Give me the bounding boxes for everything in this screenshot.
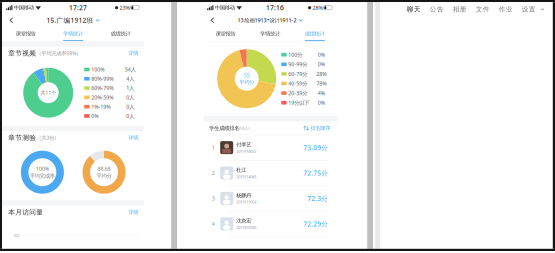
staticText: 28%: [316, 70, 326, 77]
staticText: 1: [212, 144, 215, 151]
staticText: 90-99分: [288, 61, 307, 68]
staticText: 23%: [119, 4, 129, 11]
staticText: 课堂报告: [16, 30, 36, 37]
button[interactable]: 2: [203, 160, 337, 186]
button[interactable]: 文件: [471, 5, 494, 13]
button[interactable]: 相册: [448, 5, 471, 13]
button[interactable]: 排名降序: [303, 125, 330, 131]
staticText: 0%: [318, 51, 325, 58]
staticText: 2019114045: [236, 174, 256, 179]
staticText: 0%: [318, 99, 325, 106]
staticText: 88.68: [97, 165, 110, 172]
staticText: 20-39分: [288, 90, 307, 97]
staticText: 17:16: [266, 3, 284, 12]
button[interactable]: 课堂报告: [203, 30, 248, 37]
staticText: 0人: [126, 112, 134, 119]
staticText: 60-79分: [288, 70, 307, 77]
staticText: 中国移动: [14, 4, 34, 11]
staticText: 课堂报告: [215, 30, 235, 37]
staticText: 73.09分: [303, 143, 328, 152]
staticText: 55: [244, 72, 250, 79]
staticText: 20%-59%: [91, 94, 113, 101]
staticText: 40-59分: [288, 80, 307, 87]
button[interactable]: 作业: [494, 5, 517, 13]
button[interactable]: 3: [203, 186, 337, 211]
staticText: 详情: [128, 50, 138, 56]
button[interactable]: 详情: [128, 134, 138, 141]
button[interactable]: 详情: [128, 209, 138, 215]
staticText: 排名降序: [310, 125, 330, 131]
staticText: 2019119054: [236, 199, 256, 205]
staticText: 72.75分: [303, 169, 328, 177]
staticText: 付李艺: [236, 141, 251, 148]
staticText: 3: [212, 195, 215, 202]
staticText: 1人: [126, 84, 134, 92]
staticText: 2: [212, 169, 215, 177]
staticText: 沈炎宏: [236, 218, 251, 224]
button[interactable]: 成绩统计: [292, 30, 337, 37]
staticText: 设置: [522, 5, 536, 13]
staticText: 详情: [128, 134, 138, 141]
staticText: 0%: [318, 61, 325, 68]
button[interactable]: 成绩统计: [97, 30, 144, 37]
staticText: 成绩统计: [305, 30, 325, 37]
button[interactable]: 学情统计: [248, 30, 293, 37]
staticText: 中国移动: [215, 4, 235, 11]
staticText: 杜江: [236, 167, 246, 173]
button[interactable]: 公告: [425, 5, 448, 13]
staticText: 0%: [91, 112, 98, 119]
staticText: 78%: [316, 80, 326, 87]
staticText: 60%-79%: [91, 84, 113, 92]
staticText: 100分: [288, 51, 302, 58]
button[interactable]: 4: [203, 211, 337, 237]
staticText: 平均分: [96, 173, 111, 179]
staticText: 本月访问量: [8, 208, 43, 216]
staticText: 作业: [499, 5, 513, 13]
staticText: （共3份）: [36, 134, 59, 141]
staticText: 共11个: [40, 89, 56, 96]
staticText: 2019114032: [236, 148, 256, 154]
staticText: 0人: [126, 103, 134, 110]
staticText: 80%-99%: [91, 75, 113, 82]
staticText: (93人): [239, 125, 249, 131]
staticText: 章节测验: [8, 134, 36, 142]
button[interactable]: Back: [203, 13, 222, 27]
staticText: 平均完成率: [30, 173, 55, 179]
staticText: 详情: [128, 209, 138, 215]
staticText: 17:27: [69, 3, 87, 12]
staticText: 相册: [453, 5, 467, 13]
staticText: 200: [13, 233, 19, 238]
staticText: 章节视频: [8, 49, 36, 57]
staticText: 学情统计: [260, 30, 280, 37]
staticText: 文件: [476, 5, 490, 13]
button[interactable]: 学情统计: [49, 30, 97, 37]
staticText: 杨鹏丹: [236, 192, 251, 199]
staticText: 100%: [91, 66, 104, 73]
staticText: 学情统计: [63, 30, 83, 37]
staticText: 28%: [312, 4, 322, 11]
staticText: 4: [212, 220, 215, 227]
staticText: 平均分: [239, 79, 254, 86]
staticText: 学生成绩排名: [209, 125, 239, 131]
button[interactable]: 设置: [517, 5, 540, 13]
staticText: 72.29分: [303, 219, 328, 228]
staticText: 1%-19%: [91, 103, 110, 110]
staticText: 15.广编1912班: [46, 16, 93, 25]
button[interactable]: Back: [2, 13, 21, 27]
staticText: 聊天: [407, 5, 421, 13]
staticText: 成绩统计: [110, 30, 130, 37]
button[interactable]: 聊天: [402, 5, 425, 13]
button[interactable]: 13.绘画1913+设计1911-2: [237, 13, 303, 27]
button[interactable]: 15.广编1912班: [46, 13, 100, 27]
staticText: 100%: [36, 165, 49, 172]
button[interactable]: 课堂报告: [2, 30, 49, 37]
staticText: 19分以下: [288, 99, 309, 106]
staticText: 0人: [126, 94, 134, 101]
button[interactable]: 1: [203, 135, 337, 160]
staticText: 公告: [430, 5, 444, 13]
staticText: 4人: [126, 75, 134, 82]
button[interactable]: 详情: [128, 50, 138, 56]
staticText: 72.3分: [307, 194, 328, 203]
staticText: （平均完成率98%）: [36, 50, 81, 57]
staticText: 4%: [318, 90, 325, 97]
